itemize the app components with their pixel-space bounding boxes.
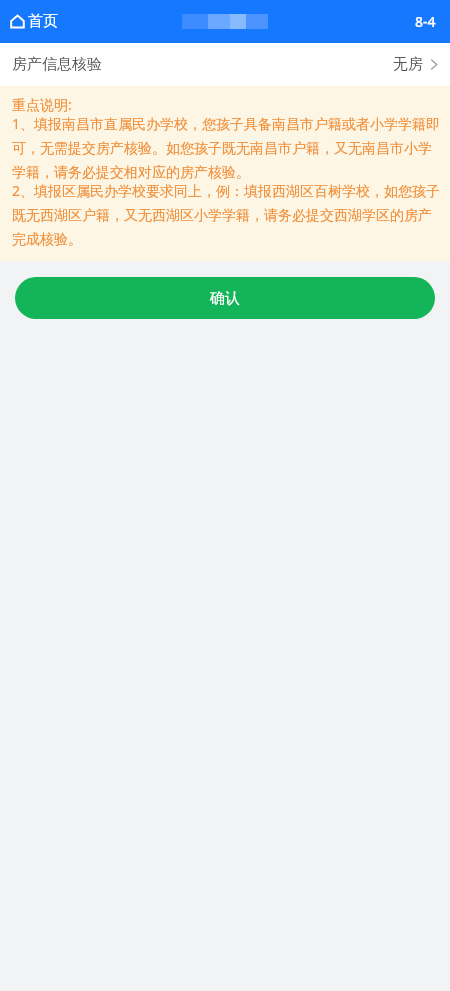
staticText: 8-4 xyxy=(415,12,436,31)
button[interactable]: 房产信息核验 xyxy=(0,43,450,86)
staticText: 2、填报区属民办学校要求同上，例：填报西湖区百树学校，如您孩子既无西湖区户籍，又… xyxy=(12,181,441,248)
other: Home xyxy=(10,14,25,29)
staticText: 首页 xyxy=(28,12,58,31)
staticText: 无房 xyxy=(393,55,423,74)
staticText: 1、填报南昌市直属民办学校，您孩子具备南昌市户籍或者小学学籍即可，无需提交房产核… xyxy=(12,114,441,181)
staticText: 重点说明: xyxy=(12,95,72,114)
staticText: 房产信息核验 xyxy=(12,55,102,74)
button[interactable]: 确认 xyxy=(15,277,435,319)
button[interactable]: Home xyxy=(6,6,62,37)
staticText: 确认 xyxy=(210,289,240,308)
